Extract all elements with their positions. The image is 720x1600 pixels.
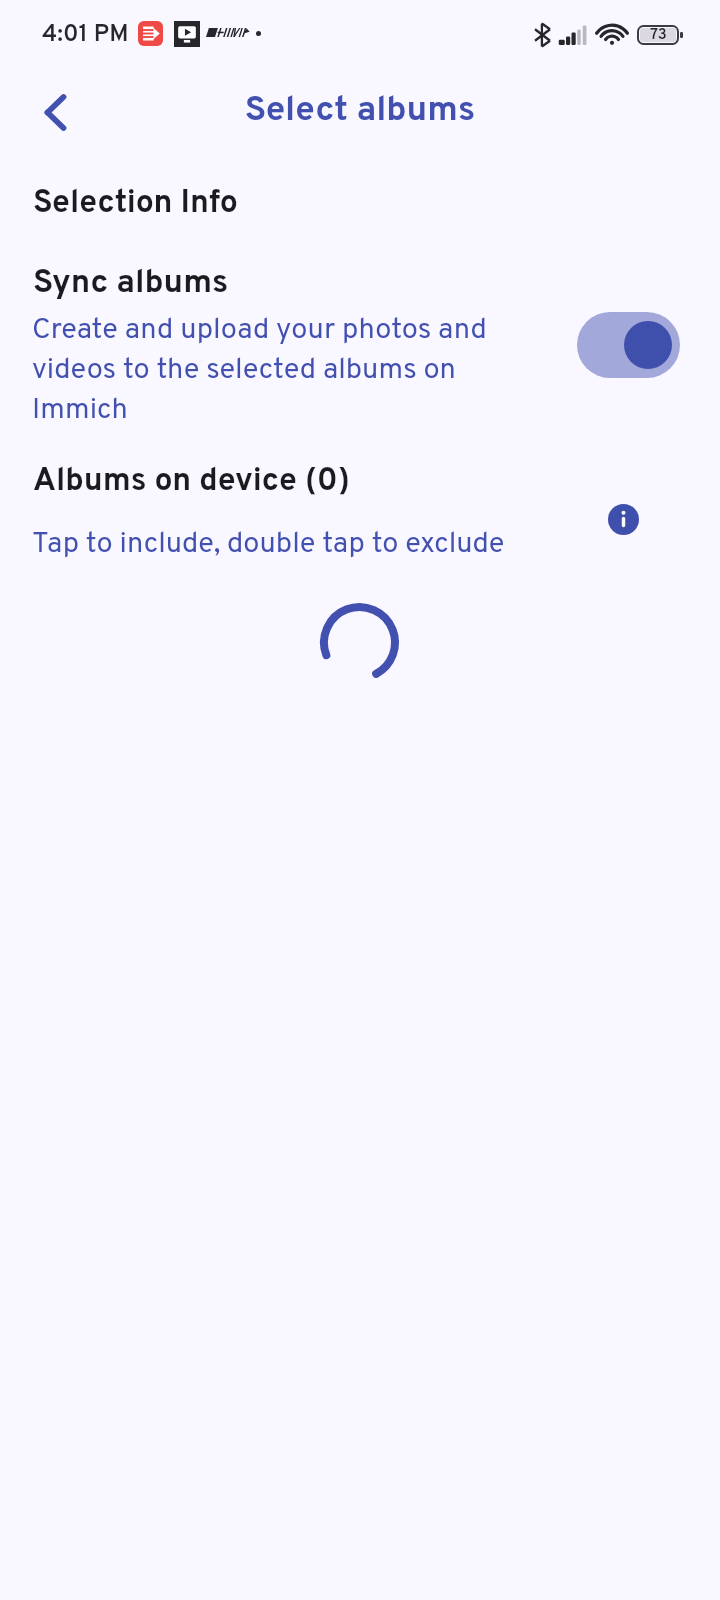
staticText: Selection Info [33, 184, 238, 225]
staticText: Tap to include, double tap to exclude [32, 526, 505, 563]
staticText: Select albums [0, 89, 720, 133]
button[interactable]: Back [17, 74, 93, 150]
staticText: Sync albums [33, 263, 229, 305]
button[interactable]: Info [596, 492, 651, 547]
button[interactable]: Sync albums row [0, 248, 720, 438]
staticText: Create and upload your photos and videos… [32, 312, 532, 429]
staticText: Albums on device (0) [33, 462, 350, 503]
button[interactable]: Albums on device row [0, 448, 720, 568]
staticText: 73 [650, 26, 667, 45]
staticText: 4:01 PM [42, 20, 129, 50]
button[interactable]: Sync albums [561, 297, 695, 393]
